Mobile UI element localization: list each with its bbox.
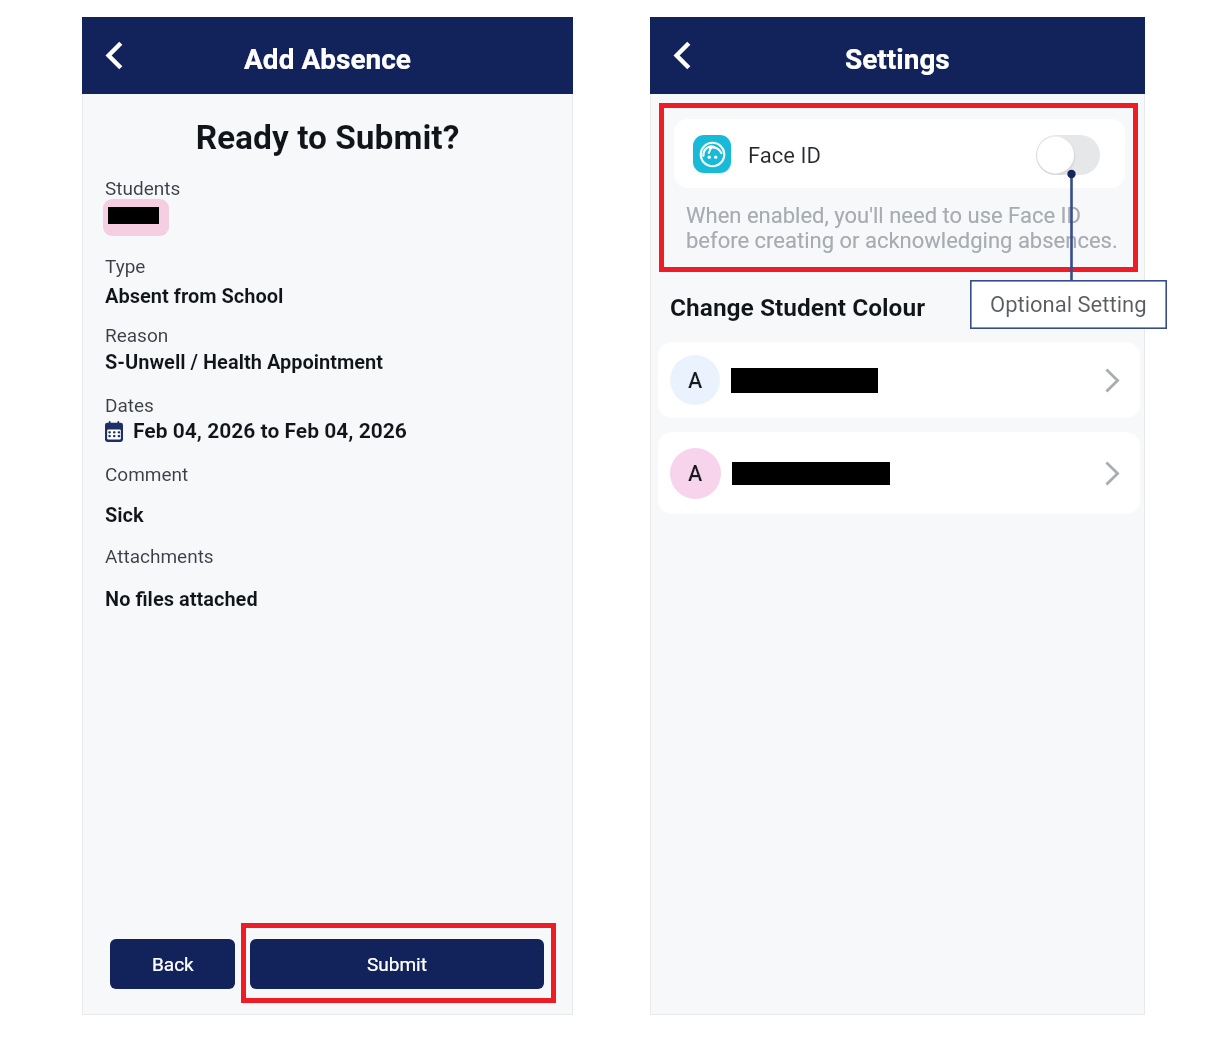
staticText: Optional Setting xyxy=(990,292,1147,318)
staticText: Feb 04, 2026 to Feb 04, 2026 xyxy=(133,419,407,444)
other: Open xyxy=(1099,361,1125,399)
button[interactable]: A xyxy=(658,342,1140,418)
staticText: Reason xyxy=(105,324,169,346)
button[interactable]: Back xyxy=(110,939,235,989)
staticText: Settings xyxy=(845,43,950,76)
staticText: Dates xyxy=(105,394,154,416)
staticText: Ready to Submit? xyxy=(82,118,573,157)
staticText: Attachments xyxy=(105,545,214,567)
button[interactable]: Submit xyxy=(250,939,544,989)
button[interactable]: Back xyxy=(90,31,139,80)
staticText: Students xyxy=(105,177,181,199)
staticText: Change Student Colour xyxy=(670,293,926,322)
staticText: A xyxy=(688,368,703,393)
staticText: When enabled, you'll need to use Face ID xyxy=(686,203,1081,229)
other: Open xyxy=(1099,454,1125,492)
staticText: before creating or acknowledging absence… xyxy=(686,228,1118,254)
staticText: Back xyxy=(152,953,194,975)
staticText: Sick xyxy=(105,503,144,526)
staticText: Type xyxy=(105,255,146,277)
staticText: A xyxy=(688,461,703,486)
staticText: Submit xyxy=(367,953,427,975)
button[interactable]: Back xyxy=(658,31,707,80)
button[interactable]: Face ID xyxy=(674,119,1125,188)
staticText: Absent from School xyxy=(105,284,284,307)
button[interactable]: Face ID toggle xyxy=(1036,135,1100,175)
staticText: Comment xyxy=(105,463,189,485)
staticText: Add Absence xyxy=(244,43,412,76)
button[interactable]: A xyxy=(658,432,1140,514)
staticText: Face ID xyxy=(748,143,821,169)
staticText: S-Unwell / Health Appointment xyxy=(105,350,384,373)
staticText: No files attached xyxy=(105,587,258,610)
